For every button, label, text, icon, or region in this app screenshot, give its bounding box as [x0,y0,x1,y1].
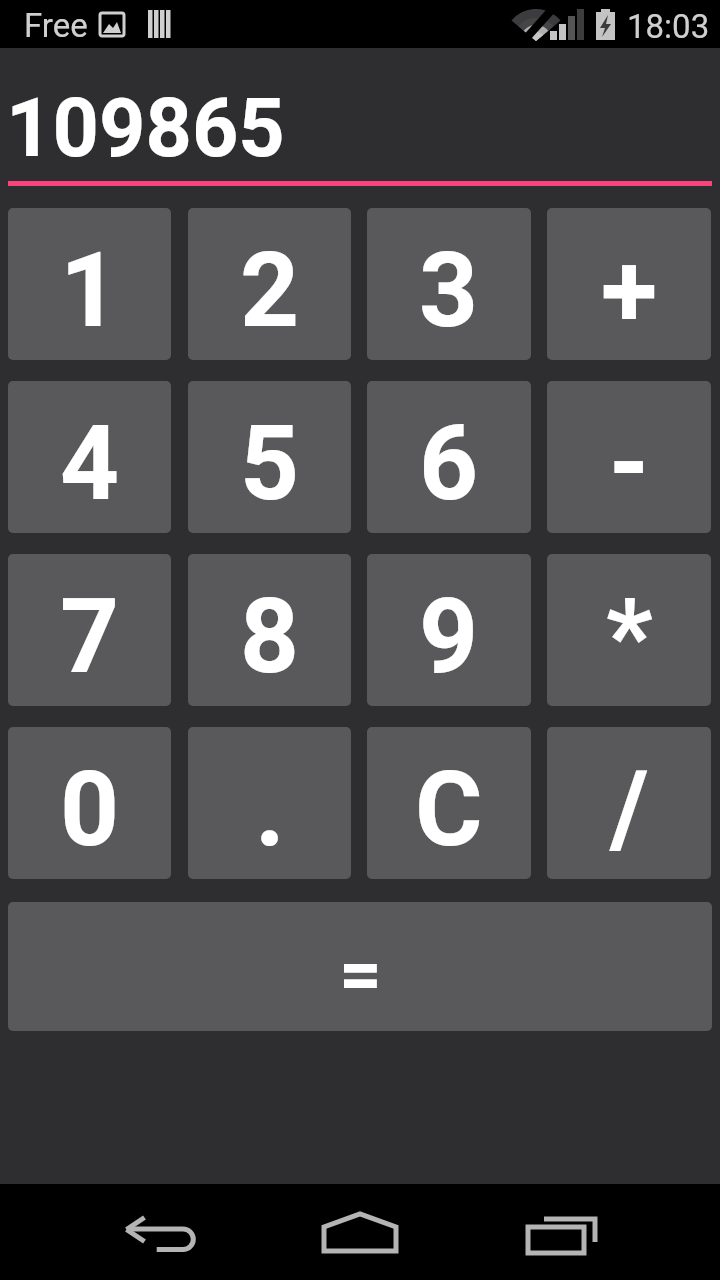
staticText: = [339,929,382,1017]
button[interactable] [310,1184,410,1280]
staticText: 1 [60,230,120,351]
staticText: 18:03 [627,7,710,46]
staticText: Free [24,6,88,45]
button[interactable]: 5 [188,381,351,533]
staticText: + [601,230,658,351]
staticText: / [610,749,649,870]
button[interactable]: 3 [367,208,531,360]
staticText: 7 [60,576,120,697]
button[interactable]: + [547,208,711,360]
button[interactable] [110,1184,210,1280]
button[interactable]: 4 [8,381,171,533]
staticText: 9 [419,576,479,697]
button[interactable]: 8 [188,554,351,706]
staticText: 4 [60,403,120,524]
button[interactable]: = [8,902,712,1031]
staticText: 8 [240,576,300,697]
button[interactable]: . [188,727,351,879]
staticText: 6 [419,403,479,524]
button[interactable]: 2 [188,208,351,360]
staticText: * [606,576,653,697]
staticText: 2 [240,230,300,351]
staticText: - [609,403,649,524]
staticText: C [415,749,483,870]
button[interactable] [510,1184,610,1280]
button[interactable]: 9 [367,554,531,706]
button[interactable]: 0 [8,727,171,879]
button[interactable]: 7 [8,554,171,706]
button[interactable]: - [547,381,711,533]
button[interactable]: 6 [367,381,531,533]
staticText: . [255,749,285,870]
staticText: 109865 [6,81,285,176]
staticText: 5 [240,403,300,524]
staticText: 3 [419,230,479,351]
button[interactable]: 1 [8,208,171,360]
staticText: 0 [60,749,120,870]
button[interactable]: C [367,727,531,879]
button[interactable]: * [547,554,711,706]
button[interactable]: / [547,727,711,879]
